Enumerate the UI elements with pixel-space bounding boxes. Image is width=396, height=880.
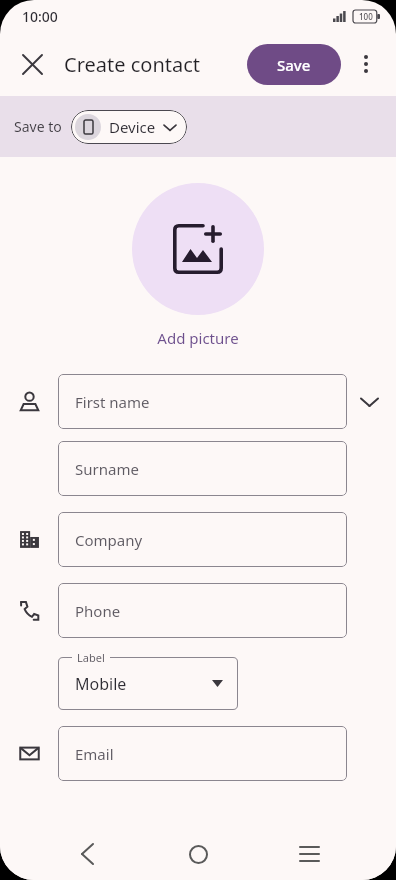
button[interactable]: More options	[344, 42, 388, 86]
button[interactable]: Mobile	[58, 657, 238, 710]
staticText: Create contact	[64, 51, 201, 78]
staticText: Phone	[75, 601, 121, 621]
button[interactable]: First name	[58, 374, 347, 429]
staticText: Save	[277, 55, 311, 75]
staticText: Surname	[75, 459, 139, 479]
button[interactable]: Close	[10, 42, 54, 86]
button[interactable]: Add picture	[132, 183, 264, 315]
button[interactable]: Recent apps	[285, 830, 333, 878]
staticText: Save to	[14, 117, 62, 136]
staticText: Email	[75, 744, 114, 764]
button[interactable]: Add picture	[157, 328, 239, 348]
button[interactable]: Email	[58, 726, 347, 781]
staticText: Company	[75, 530, 143, 550]
button[interactable]: Back	[63, 830, 111, 878]
button[interactable]: Expand name fields	[347, 380, 391, 424]
button[interactable]: Home	[174, 830, 222, 878]
button[interactable]: Save	[247, 44, 341, 85]
staticText: Device	[109, 117, 156, 137]
staticText: First name	[75, 392, 150, 412]
staticText: 100	[359, 11, 373, 22]
staticText: 10:00	[22, 7, 58, 26]
button[interactable]: Device	[71, 110, 187, 144]
staticText: Mobile	[75, 673, 127, 695]
button[interactable]: Surname	[58, 441, 347, 496]
button[interactable]: Company	[58, 512, 347, 567]
staticText: Label	[77, 650, 105, 665]
button[interactable]: Phone	[58, 583, 347, 638]
